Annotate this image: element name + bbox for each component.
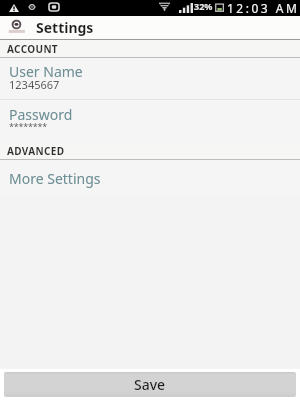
staticText: More Settings xyxy=(9,169,101,188)
button[interactable]: User Name xyxy=(0,58,300,99)
button[interactable]: Save xyxy=(4,372,296,397)
button[interactable]: More Settings xyxy=(0,160,300,196)
button[interactable]: Password xyxy=(0,100,300,142)
staticText: User Name xyxy=(9,62,83,81)
staticText: Password xyxy=(9,105,73,124)
staticText: 12345667 xyxy=(9,77,60,92)
staticText: Settings xyxy=(36,18,94,37)
staticText: ******** xyxy=(9,120,48,132)
staticText: 32% xyxy=(194,0,213,12)
staticText: ADVANCED xyxy=(7,144,65,158)
staticText: Save xyxy=(134,375,166,394)
staticText: 12:03 AM xyxy=(227,0,300,16)
staticText: ACCOUNT xyxy=(7,42,58,56)
